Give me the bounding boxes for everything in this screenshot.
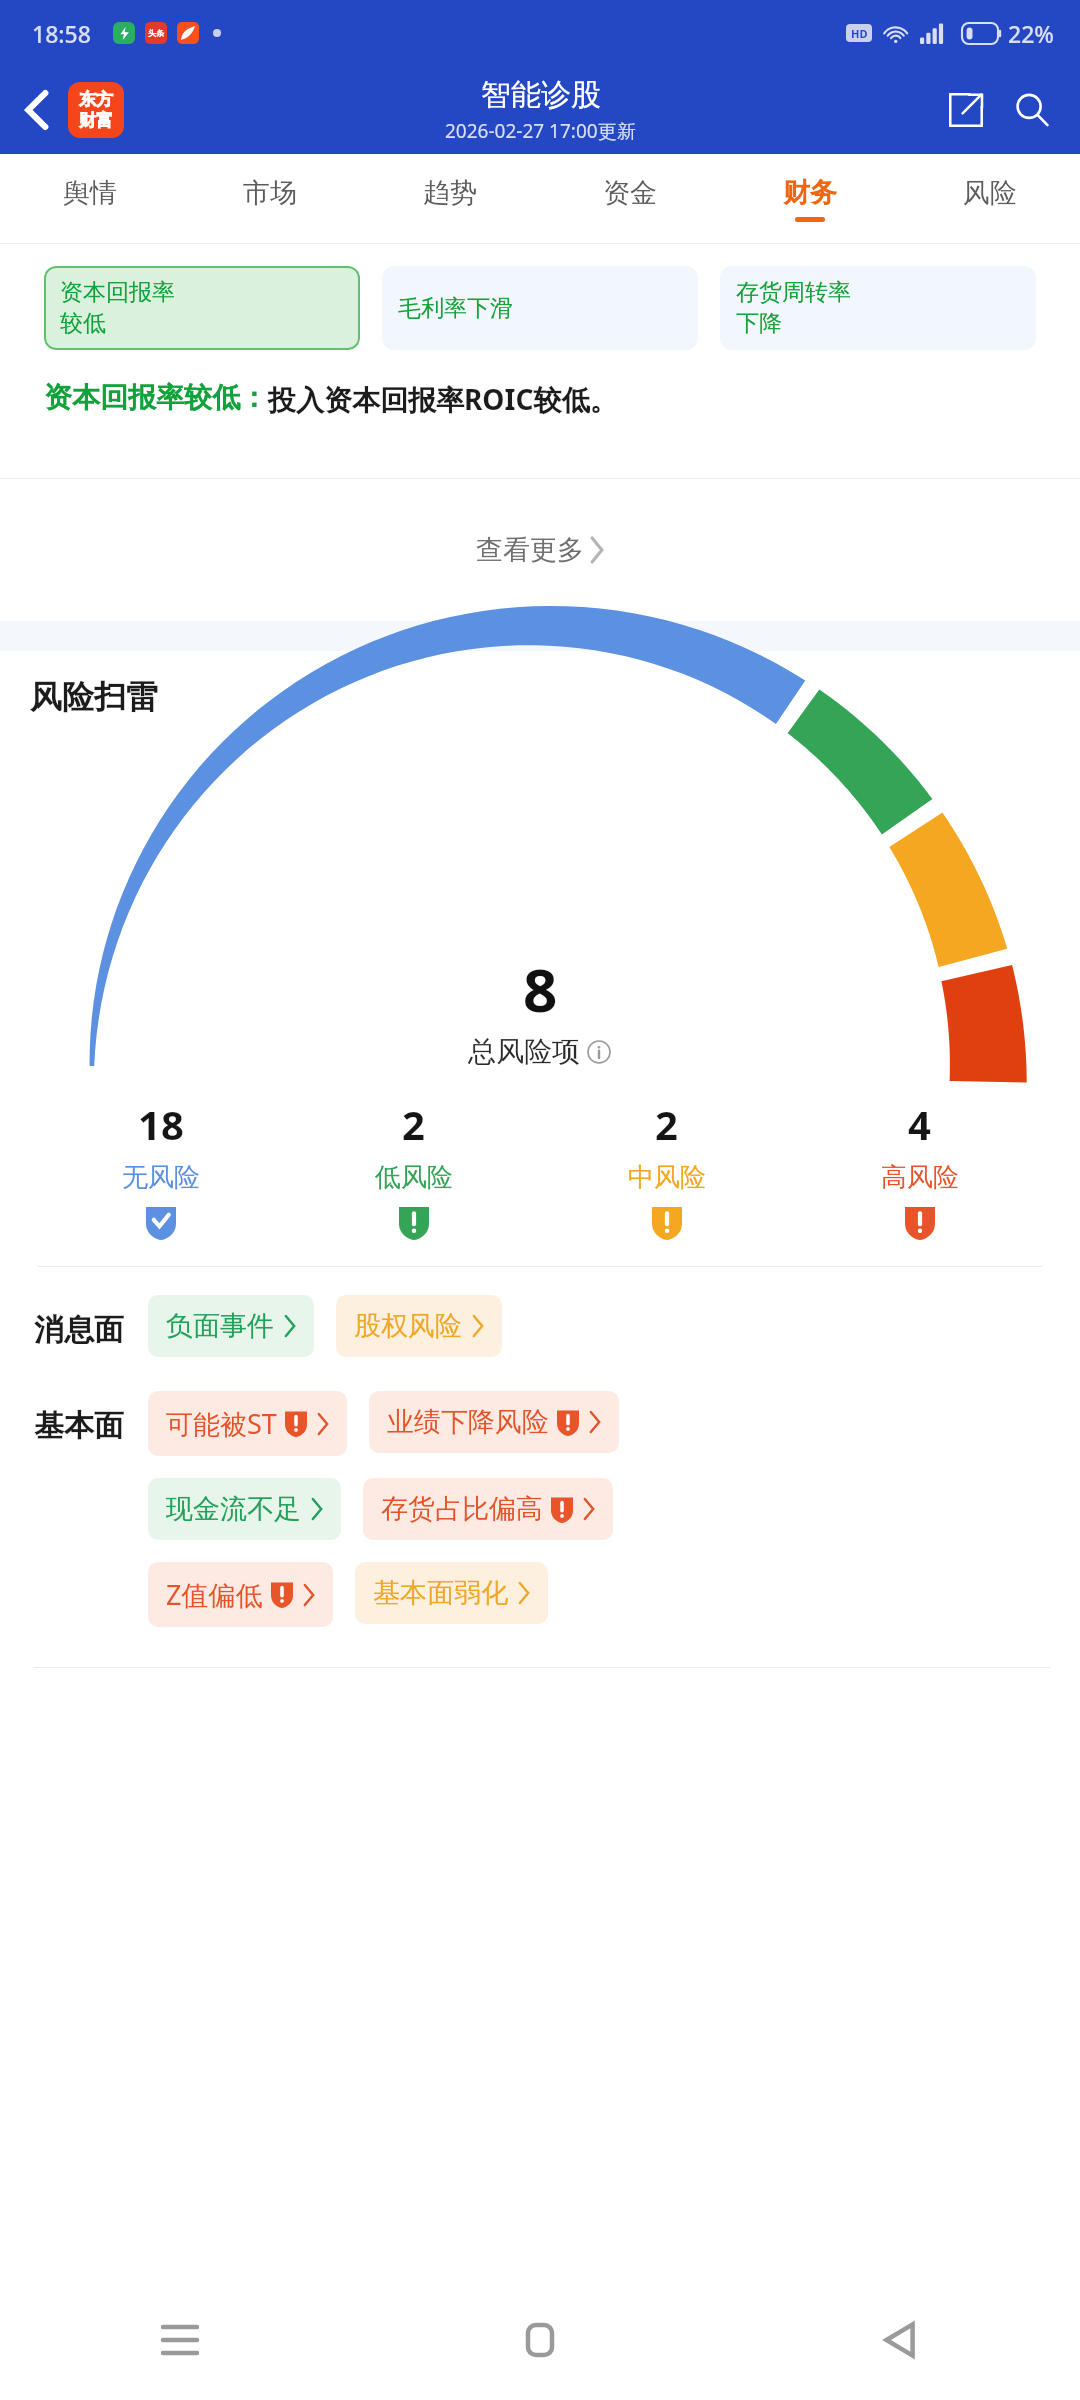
staticText: 低风险: [375, 1161, 453, 1194]
staticText: 业绩下降风险: [387, 1405, 549, 1439]
button[interactable]: 资金: [540, 154, 720, 244]
button[interactable]: 资本回报率 较低: [44, 266, 360, 350]
button[interactable]: 可能被ST: [148, 1391, 347, 1456]
button[interactable]: 东方财富: [68, 82, 124, 138]
button[interactable]: 负面事件: [148, 1295, 314, 1357]
staticText: 股权风险: [354, 1309, 462, 1343]
staticText: 高风险: [881, 1161, 959, 1194]
staticText: 存货占比偏高: [381, 1492, 543, 1526]
staticText: 风险扫雷: [30, 677, 158, 717]
staticText: 资本回报率较低：: [44, 380, 268, 415]
staticText: 存货周转率 下降: [736, 278, 851, 338]
staticText: 智能诊股: [481, 76, 601, 114]
button[interactable]: 2: [540, 1097, 793, 1240]
button[interactable]: 2: [287, 1097, 540, 1240]
staticText: 消息面: [34, 1311, 124, 1349]
button[interactable]: 查看更多: [0, 479, 1080, 621]
button[interactable]: Back: [720, 2280, 1080, 2400]
staticText: 2026-02-27 17:00更新: [445, 118, 636, 144]
staticText: 8: [523, 948, 558, 1030]
staticText: 财务: [783, 176, 837, 210]
staticText: 现金流不足: [166, 1492, 301, 1526]
staticText: 舆情: [63, 176, 117, 210]
button[interactable]: 风险: [900, 154, 1080, 244]
button[interactable]: 存货周转率 下降: [720, 266, 1036, 350]
button[interactable]: 舆情: [0, 154, 180, 244]
button[interactable]: 基本面弱化: [355, 1562, 548, 1624]
button[interactable]: 18: [34, 1097, 287, 1240]
staticText: 市场: [243, 176, 297, 210]
staticText: 18:58: [32, 18, 91, 49]
button[interactable]: 毛利率下滑: [382, 266, 698, 350]
staticText: 查看更多: [476, 533, 584, 567]
button[interactable]: 财务: [720, 154, 900, 244]
button[interactable]: Z值偏低: [148, 1562, 333, 1627]
staticText: 总风险项: [468, 1034, 580, 1069]
button[interactable]: 市场: [180, 154, 360, 244]
staticText: 基本面弱化: [373, 1576, 508, 1610]
staticText: 头条: [148, 28, 164, 38]
button[interactable]: Back: [8, 81, 66, 139]
staticText: Z值偏低: [166, 1576, 263, 1613]
staticText: 18: [138, 1097, 184, 1151]
button[interactable]: Recents: [0, 2280, 360, 2400]
staticText: 2: [655, 1097, 678, 1151]
staticText: 基本面: [34, 1407, 124, 1445]
button[interactable]: Home: [360, 2280, 720, 2400]
button[interactable]: 存货占比偏高: [363, 1478, 613, 1540]
staticText: 投入资本回报率ROIC较低。: [268, 380, 618, 418]
staticText: 东方: [79, 89, 113, 110]
staticText: 无风险: [122, 1161, 200, 1194]
staticText: 中风险: [628, 1161, 706, 1194]
button[interactable]: Search: [1002, 80, 1062, 140]
staticText: 22%: [1008, 18, 1054, 49]
button[interactable]: 趋势: [360, 154, 540, 244]
staticText: 2: [402, 1097, 425, 1151]
button[interactable]: 4: [793, 1097, 1046, 1240]
staticText: HD: [851, 26, 868, 41]
staticText: 趋势: [423, 176, 477, 210]
staticText: 负面事件: [166, 1309, 274, 1343]
staticText: 毛利率下滑: [398, 294, 513, 323]
staticText: 资本回报率 较低: [60, 278, 175, 338]
staticText: 风险: [963, 176, 1017, 210]
button[interactable]: 股权风险: [336, 1295, 502, 1357]
button[interactable]: 现金流不足: [148, 1478, 341, 1540]
staticText: 4: [908, 1097, 931, 1151]
button[interactable]: Share: [936, 80, 996, 140]
staticText: 财富: [79, 110, 113, 131]
staticText: 可能被ST: [166, 1405, 277, 1442]
staticText: 资金: [603, 176, 657, 210]
button[interactable]: 业绩下降风险: [369, 1391, 619, 1453]
button[interactable]: Info: [586, 1039, 612, 1065]
